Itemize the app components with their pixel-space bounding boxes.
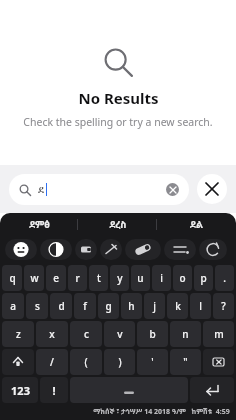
button[interactable]: Clipboard [75, 239, 97, 260]
button[interactable]: m [203, 321, 234, 347]
staticText: z [16, 327, 21, 341]
staticText: / [50, 355, 54, 369]
button[interactable]: / [36, 349, 68, 375]
button[interactable]: h [121, 293, 142, 319]
staticText: ( [84, 355, 88, 369]
button[interactable]: x [36, 321, 68, 347]
button[interactable]: Backspace [203, 349, 234, 375]
button[interactable]: Theme [40, 239, 72, 260]
staticText: " [183, 355, 188, 369]
staticText: No Results [78, 88, 159, 108]
button[interactable]: ደል [157, 213, 236, 235]
staticText: q [9, 271, 16, 285]
button[interactable]: k [167, 293, 188, 319]
button[interactable]: ) [104, 349, 135, 375]
staticText: a [10, 299, 16, 313]
staticText: d [58, 299, 65, 313]
button[interactable]: o [173, 265, 192, 291]
staticText: p [200, 271, 207, 285]
button[interactable]: Shift [2, 349, 34, 375]
button[interactable]: Close search [197, 174, 227, 204]
button[interactable]: g [98, 293, 119, 319]
staticText: . [223, 271, 226, 285]
staticText: ደምፅ [29, 218, 50, 231]
staticText: u [137, 271, 144, 285]
button[interactable]: ደ [9, 174, 189, 205]
button[interactable]: Stickers [125, 239, 161, 260]
button[interactable]: Clear text [166, 183, 179, 196]
button[interactable]: q [2, 265, 22, 291]
button[interactable]: . [215, 265, 234, 291]
button[interactable]: Emoji [5, 239, 37, 260]
button[interactable]: Enter [190, 377, 234, 403]
button[interactable]: d [50, 293, 72, 319]
staticText: ማክሰኞ ፣ ታኅሣሥ 14 2018 ዓ/ም ከምሽቱ 4:59 [93, 407, 230, 417]
button[interactable]: b [137, 321, 168, 347]
staticText: 123 [11, 383, 30, 398]
staticText: r [75, 271, 80, 285]
staticText: ? [221, 299, 226, 313]
staticText: g [105, 299, 112, 313]
staticText: b [149, 327, 156, 341]
staticText: s [35, 299, 40, 313]
button[interactable]: ( [70, 349, 102, 375]
staticText: ! [52, 383, 56, 398]
staticText: h [128, 299, 135, 313]
button[interactable]: f [74, 293, 96, 319]
staticText: k [175, 299, 181, 313]
staticText: l [199, 299, 202, 313]
button[interactable]: ? [213, 293, 234, 319]
button[interactable]: z [2, 321, 34, 347]
staticText: n [182, 327, 189, 341]
button[interactable]: s [26, 293, 48, 319]
staticText: f [83, 299, 87, 313]
button[interactable]: j [144, 293, 165, 319]
button[interactable]: c [70, 321, 102, 347]
button[interactable]: e [46, 265, 66, 291]
staticText: j [153, 299, 156, 313]
staticText: t [97, 271, 101, 285]
button[interactable]: ! [40, 377, 68, 403]
staticText: m [214, 327, 224, 341]
button[interactable]: t [89, 265, 108, 291]
button[interactable]: y [110, 265, 129, 291]
button[interactable]: ' [137, 349, 168, 375]
staticText: e [53, 271, 59, 285]
button[interactable]: i [152, 265, 171, 291]
staticText: ደ [38, 184, 44, 195]
staticText: y [117, 271, 123, 285]
staticText: ' [151, 355, 154, 369]
button[interactable]: l [190, 293, 211, 319]
staticText: ደረስ [109, 218, 127, 231]
button[interactable]: Settings [199, 239, 227, 260]
staticText: w [30, 271, 39, 285]
button[interactable]: u [131, 265, 150, 291]
button[interactable]: p [194, 265, 213, 291]
button[interactable]: Translate [164, 239, 196, 260]
button[interactable]: n [170, 321, 201, 347]
staticText: ደል [190, 218, 203, 231]
staticText: Check the spelling or try a new search. [23, 115, 213, 129]
button[interactable]: v [104, 321, 135, 347]
button[interactable]: w [24, 265, 44, 291]
button[interactable]: r [68, 265, 87, 291]
staticText: i [160, 271, 163, 285]
button[interactable]: Space [70, 377, 188, 403]
button[interactable]: ደረስ [78, 213, 157, 235]
staticText: v [117, 327, 123, 341]
staticText: o [179, 271, 186, 285]
staticText: x [49, 327, 55, 341]
staticText: c [84, 327, 89, 341]
button[interactable]: " [170, 349, 201, 375]
staticText: ) [118, 355, 122, 369]
button[interactable]: Voice typing [100, 239, 122, 260]
button[interactable]: a [2, 293, 24, 319]
button[interactable]: 123 [2, 377, 38, 403]
button[interactable]: ደምፅ [0, 213, 78, 235]
